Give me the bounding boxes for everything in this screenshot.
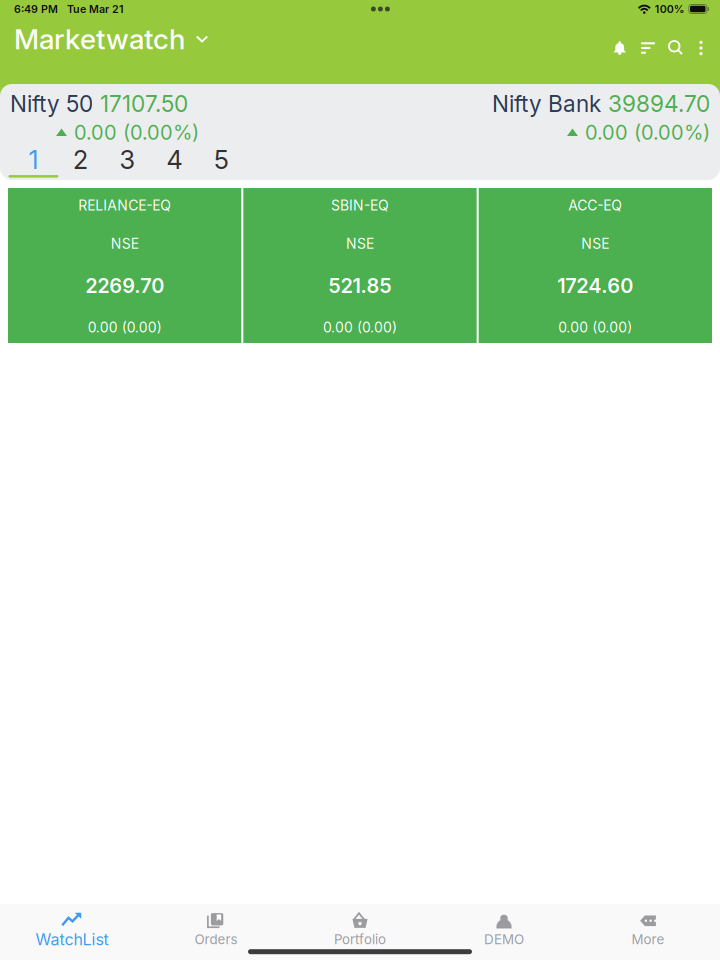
staticText: WatchList bbox=[35, 930, 108, 949]
staticText: 17107.50 bbox=[100, 90, 188, 117]
staticText: Nifty 50 bbox=[10, 90, 93, 117]
button[interactable]: More bbox=[576, 903, 720, 947]
staticText: SBIN-EQ bbox=[331, 197, 389, 214]
staticText: Nifty Bank bbox=[492, 90, 601, 117]
staticText: 2 bbox=[73, 144, 88, 175]
staticText: DEMO bbox=[484, 931, 524, 947]
staticText: 6:49 PM bbox=[14, 2, 58, 15]
staticText: ACC-EQ bbox=[568, 197, 622, 214]
button[interactable]: Sort bbox=[634, 29, 662, 67]
staticText: 0.00 (0.00%) bbox=[585, 120, 710, 145]
button[interactable]: Marketwatch bbox=[14, 20, 208, 58]
button[interactable]: WatchList bbox=[0, 902, 144, 949]
staticText: NSE bbox=[111, 235, 139, 252]
button[interactable]: Orders bbox=[144, 903, 288, 947]
staticText: 0.00 (0.00) bbox=[88, 319, 162, 336]
button[interactable]: More options bbox=[690, 29, 712, 67]
staticText: RELIANCE-EQ bbox=[78, 197, 171, 214]
button[interactable]: 5 bbox=[198, 147, 245, 180]
button[interactable]: 2 bbox=[57, 147, 104, 180]
staticText: 39894.70 bbox=[608, 90, 710, 117]
staticText: 521.85 bbox=[328, 273, 391, 298]
staticText: 3 bbox=[119, 144, 135, 175]
button[interactable]: Portfolio bbox=[288, 903, 432, 947]
staticText: 4 bbox=[166, 144, 182, 175]
staticText: NSE bbox=[346, 235, 374, 252]
staticText: More bbox=[631, 931, 664, 947]
staticText: Marketwatch bbox=[14, 22, 185, 56]
button[interactable]: DEMO bbox=[432, 903, 576, 947]
staticText: 1724.60 bbox=[557, 273, 633, 298]
button[interactable]: SBIN-EQ bbox=[243, 188, 477, 343]
staticText: 0.00 (0.00) bbox=[323, 319, 397, 336]
button[interactable]: 4 bbox=[151, 147, 198, 180]
staticText: Portfolio bbox=[334, 931, 386, 947]
button[interactable]: RELIANCE-EQ bbox=[8, 188, 241, 343]
button[interactable]: Alerts bbox=[606, 29, 634, 67]
button[interactable]: ACC-EQ bbox=[479, 188, 712, 343]
staticText: 2269.70 bbox=[85, 273, 164, 298]
staticText: 1 bbox=[28, 144, 38, 175]
staticText: Orders bbox=[194, 931, 237, 947]
staticText: 0.00 (0.00) bbox=[558, 319, 632, 336]
button[interactable]: 1 bbox=[10, 147, 57, 180]
staticText: NSE bbox=[581, 235, 609, 252]
staticText: 100% bbox=[655, 2, 685, 15]
button[interactable]: Search bbox=[662, 29, 690, 67]
button[interactable]: 3 bbox=[104, 147, 151, 180]
staticText: Tue Mar 21 bbox=[67, 2, 124, 15]
staticText: 0.00 (0.00%) bbox=[74, 120, 199, 145]
staticText: 5 bbox=[214, 144, 229, 175]
